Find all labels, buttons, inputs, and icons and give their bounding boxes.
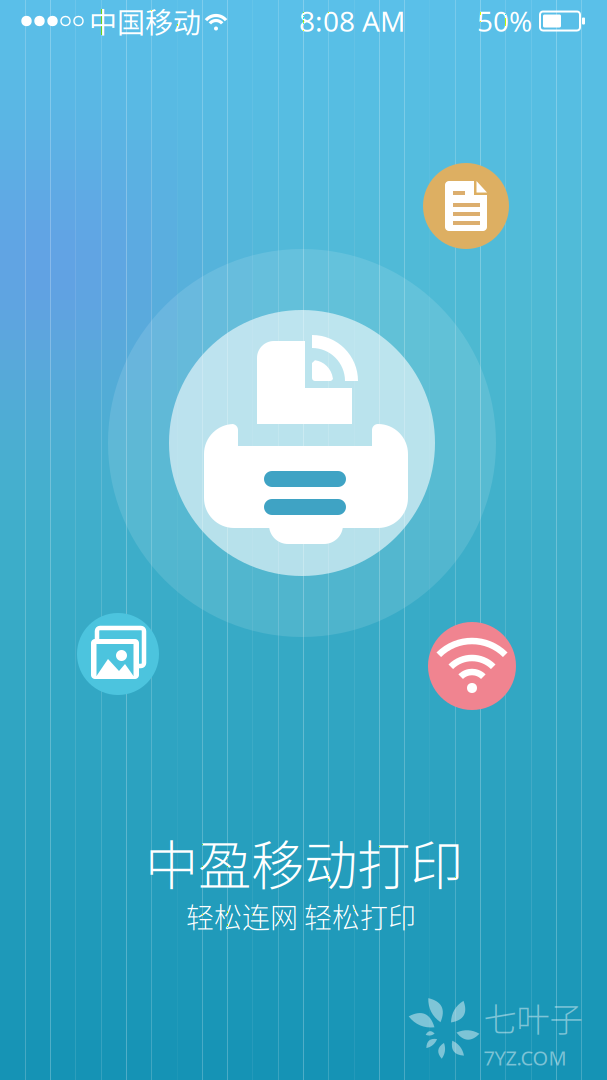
staticText: 七叶子 — [483, 993, 582, 1041]
button[interactable]: Wi-Fi setup — [428, 622, 516, 710]
staticText: 50% — [477, 2, 532, 40]
button[interactable]: Documents — [423, 163, 509, 249]
staticText: 7YZ.COM — [483, 1044, 566, 1071]
button[interactable]: Photos — [77, 613, 159, 695]
staticText: 8:08 AM — [299, 2, 405, 40]
staticText: 中盈移动打印 — [145, 823, 463, 901]
staticText: 中国移动 — [83, 1, 201, 41]
staticText: 轻松连网 轻松打印 — [186, 896, 416, 936]
